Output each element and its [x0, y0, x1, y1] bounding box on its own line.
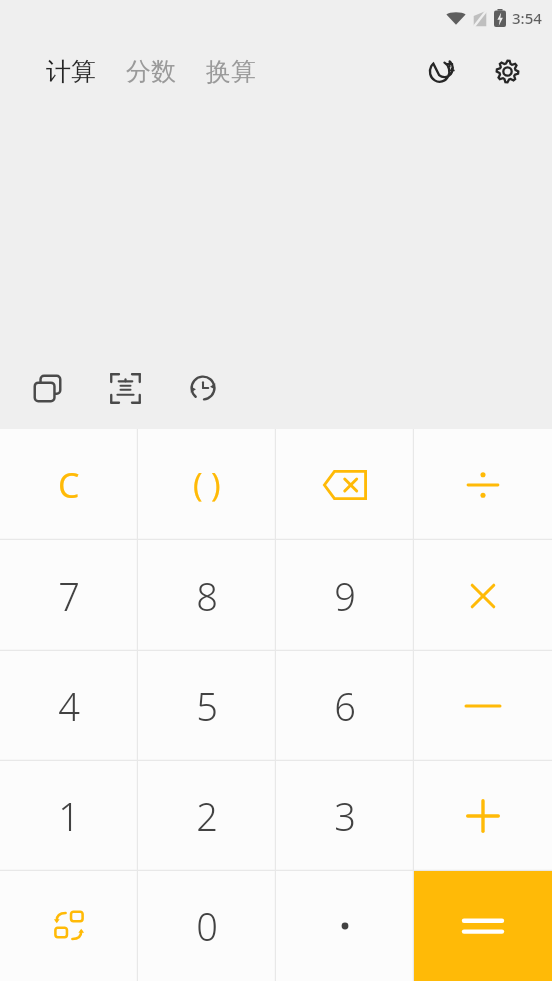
button[interactable]: 0	[138, 871, 276, 981]
button[interactable]: 分数	[124, 50, 178, 93]
button[interactable]: 6	[276, 651, 414, 761]
button[interactable]: 1	[0, 761, 138, 871]
staticText: C	[58, 462, 80, 508]
button[interactable]: Copy	[20, 361, 74, 415]
staticText: 0	[196, 900, 218, 952]
button[interactable]: Night mode	[418, 48, 464, 94]
button[interactable]: 9	[276, 540, 414, 651]
button[interactable]: Convert	[0, 871, 138, 981]
staticText: 计算	[46, 56, 96, 87]
button[interactable]: 3	[276, 761, 414, 871]
staticText: 2	[196, 790, 218, 842]
button[interactable]: C	[0, 429, 138, 540]
staticText: 3:54	[512, 8, 542, 28]
button[interactable]: ( )	[138, 429, 276, 540]
staticText: 1	[58, 790, 80, 842]
button[interactable]: Settings	[484, 48, 530, 94]
staticText: 4	[58, 680, 80, 732]
button[interactable]: Minus	[414, 651, 552, 761]
button[interactable]: Plus	[414, 761, 552, 871]
button[interactable]: 7	[0, 540, 138, 651]
button[interactable]: Equals	[414, 871, 552, 981]
button[interactable]: 5	[138, 651, 276, 761]
staticText: 5	[196, 680, 218, 732]
button[interactable]: 8	[138, 540, 276, 651]
button[interactable]: Divide	[414, 429, 552, 540]
staticText: 7	[58, 570, 80, 622]
staticText: 分数	[126, 56, 176, 87]
button[interactable]	[276, 871, 414, 981]
button[interactable]: Backspace	[276, 429, 414, 540]
button[interactable]: Chinese numerals	[98, 361, 152, 415]
button[interactable]: History	[176, 361, 230, 415]
button[interactable]: Multiply	[414, 540, 552, 651]
button[interactable]: 换算	[204, 50, 258, 93]
staticText: 9	[334, 570, 356, 622]
staticText: 3	[334, 790, 356, 842]
staticText: 8	[196, 570, 218, 622]
staticText: 6	[334, 680, 356, 732]
button[interactable]: 4	[0, 651, 138, 761]
button[interactable]: 2	[138, 761, 276, 871]
staticText: ( )	[193, 463, 221, 507]
staticText: 换算	[206, 56, 256, 87]
button[interactable]: 计算	[44, 50, 98, 93]
